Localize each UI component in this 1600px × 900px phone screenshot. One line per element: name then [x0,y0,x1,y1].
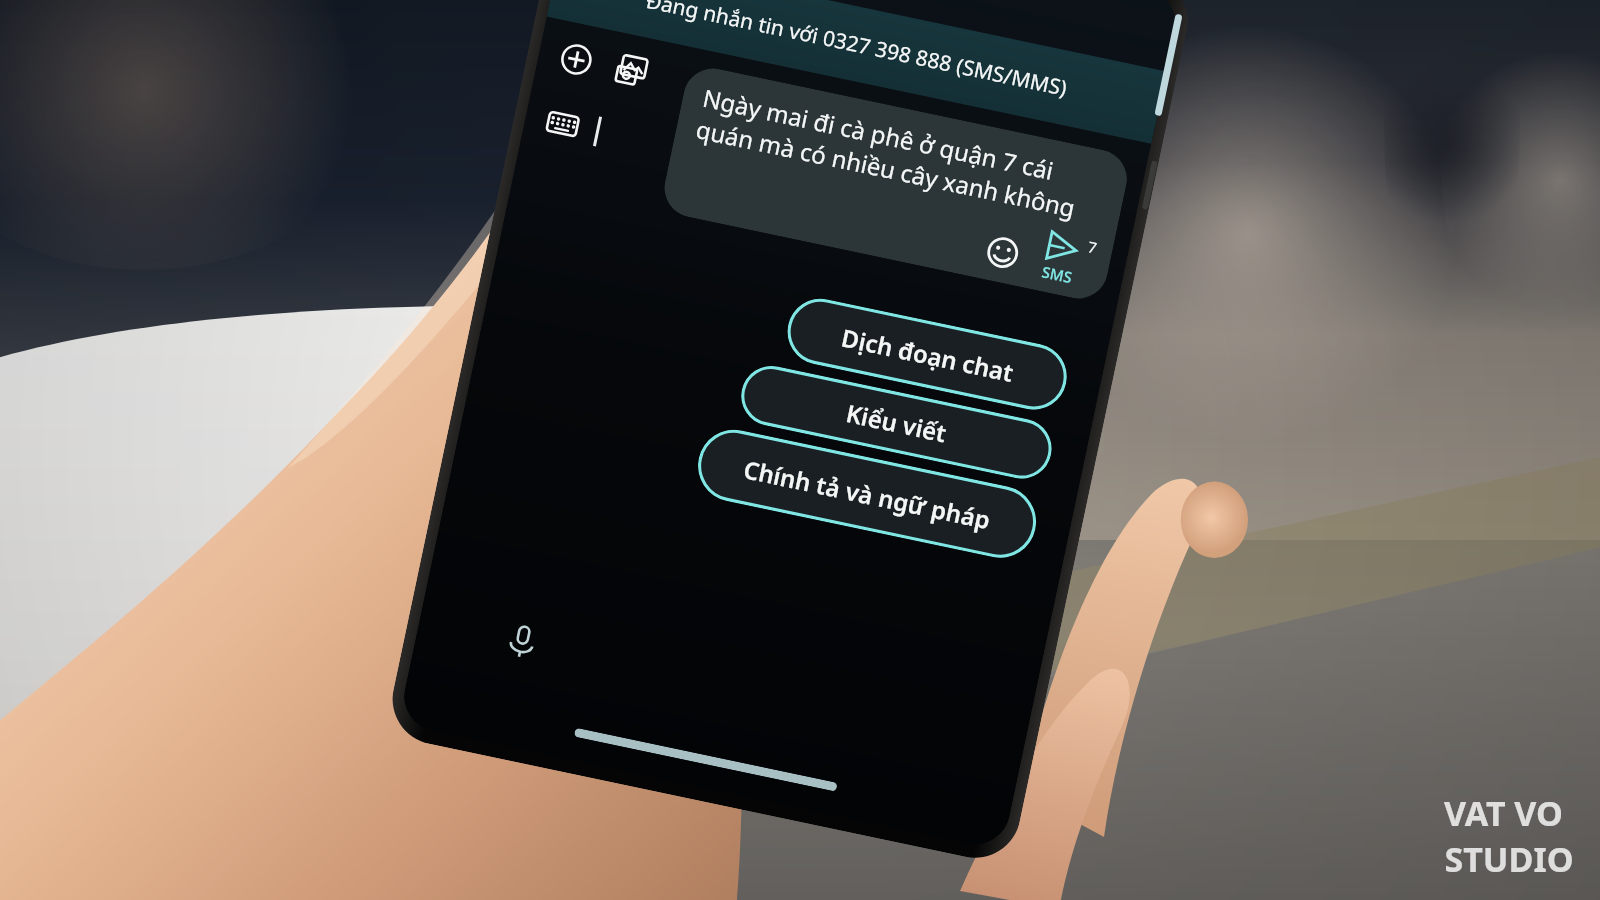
staticText: Kiểu viết [843,396,950,449]
staticText: Chính tả và ngữ pháp [740,452,994,536]
button[interactable]: Open gallery [607,47,655,95]
staticText: Đang nhắn tin với 0327 398 888 (SMS/MMS) [643,0,1070,103]
staticText: Ngày mai đi cà phê ở quận 7 cái quán mà … [693,81,1114,230]
staticText: 7 [1086,236,1099,258]
button[interactable]: SMS [1038,227,1082,287]
staticText: SMS [1040,261,1074,287]
button[interactable]: Voice input [495,615,549,669]
button[interactable]: Insert emoji [979,229,1026,276]
button[interactable] [574,728,838,792]
button[interactable]: Keyboard [539,100,586,148]
button[interactable]: Ngày mai đi cà phê ở quận 7 cái quán mà … [659,63,1132,304]
button[interactable]: Kiểu viết [736,360,1057,484]
staticText: VAT VO [1444,790,1563,836]
button[interactable]: Dịch đoạn chat [781,293,1073,416]
staticText: Dịch đoạn chat [838,321,1016,389]
button[interactable]: Đang nhắn tin với 0327 398 888 (SMS/MMS) [547,0,1167,144]
button[interactable]: Chính tả và ngữ pháp [691,423,1043,564]
staticText: STUDIO [1444,836,1574,882]
button[interactable]: Add attachment [553,36,600,83]
